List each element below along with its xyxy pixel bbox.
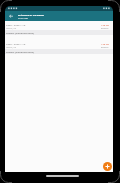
staticText: +75.00 [101, 42, 109, 45]
staticText: Fri 30 Aug [18, 17, 28, 20]
staticText: Balance [101, 46, 109, 49]
button[interactable] [103, 162, 112, 171]
staticText: Balance [101, 27, 109, 30]
staticText: +75.00 [101, 23, 109, 26]
staticText: Fidelity (Sampling Expo) [6, 50, 34, 53]
staticText: 2300 - 0200 + 1d [6, 42, 26, 45]
staticText: Fidelity (Sampling Expo) [6, 31, 34, 34]
button[interactable] [9, 14, 14, 19]
button[interactable]: 2300 - 0200 + 1d [5, 21, 113, 40]
staticText: Entwined in Paradigm [18, 13, 45, 16]
staticText: Nov 27, Se [6, 46, 16, 49]
staticText: 2300 - 0200 + 1d [6, 23, 26, 26]
staticText: Nov 27, Se [6, 27, 16, 30]
button[interactable]: 2300 - 0200 + 1d [5, 40, 113, 59]
